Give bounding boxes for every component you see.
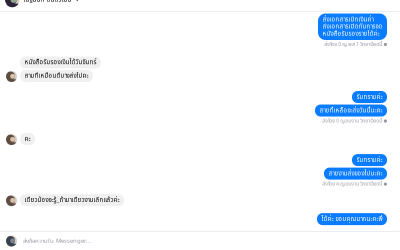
button[interactable]: ณัฐนันท์ ตันติวัฒน์: [0, 0, 400, 11]
staticText: ส่งเอกสารเบิกเงินค่า ส่งเอกสารเปิดกับการ…: [322, 16, 382, 38]
staticText: เดียวน้องจะรู้_ถ้ามาเดียวงานเลิกแล้วค่ะ: [24, 196, 119, 204]
button[interactable]: สามทีเหมือนดีบางส่งไปคะ: [0, 70, 400, 82]
staticText: ส่งโดย ค.ญ.ชมงาม วิทยาเวียดนี้: [322, 181, 382, 187]
staticText: สายงานส่งของไปนะคะ: [328, 170, 382, 177]
staticText: รับทราบค่ะ: [356, 156, 382, 164]
staticText: ส่งข้อความใน Messenger...: [23, 237, 92, 245]
staticText: ณัฐนันท์ ตันติวัฒน์: [23, 0, 71, 4]
staticText: ส่งโดย 0 ญ. พ.ศ.1 วิทยาเวียดนี้: [324, 41, 382, 47]
staticText: ได้ค่ะ ขอบคุณมากนะคะพี่: [321, 215, 382, 223]
staticText: รับทราบค่ะ: [356, 93, 382, 101]
staticText: สายที่เหลือจะส่งวันนี้นะคะ: [319, 107, 382, 114]
button[interactable]: คะ: [0, 133, 400, 145]
staticText: สามทีเหมือนดีบางส่งไปคะ: [24, 72, 88, 80]
button[interactable]: เดียวน้องจะรู้_ถ้ามาเดียวงานเลิกแล้วค่ะ: [0, 194, 400, 206]
staticText: หนังสือรับรองเงินได้วันจันทร์: [24, 59, 96, 66]
staticText: คะ: [24, 135, 30, 143]
button[interactable]: ส่งข้อความใน Messenger...: [0, 232, 400, 250]
staticText: ส่งโดย 0 ญ.ชมงาม วิทยาเวียดนี้: [322, 118, 382, 124]
button[interactable]: หนังสือรับรองเงินได้วันจันทร์: [0, 56, 400, 68]
